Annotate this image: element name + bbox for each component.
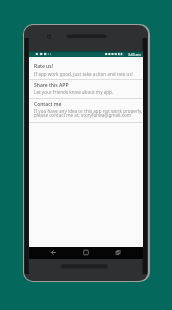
staticText: 3:43 am <box>128 52 141 57</box>
button[interactable] <box>79 247 92 259</box>
staticText: If app work good, just take action and r… <box>34 71 133 77</box>
staticText: Contact me <box>34 101 62 108</box>
staticText: Let your friends know about my app. <box>34 89 114 95</box>
button[interactable]: Contact me <box>29 99 143 122</box>
staticText: please contact me at: storyforwa@gmail.c… <box>34 112 132 118</box>
staticText: Share this APP <box>34 82 69 89</box>
button[interactable] <box>111 247 124 259</box>
button[interactable]: Share this APP <box>29 80 143 98</box>
button[interactable]: Rate us! <box>29 57 143 79</box>
button[interactable] <box>47 247 60 259</box>
staticText: If you have any idea or this app not wor… <box>34 108 143 114</box>
staticText: Rate us! <box>34 63 54 70</box>
